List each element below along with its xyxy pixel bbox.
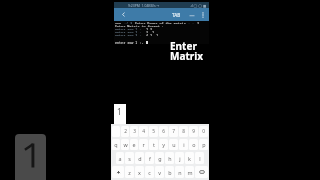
button[interactable]: c [145,166,154,178]
button[interactable]: Backspace [195,166,208,178]
staticText: Enter Power of the matrix [135,21,186,24]
staticText: n [178,169,182,176]
staticText: i [183,141,185,148]
button[interactable]: n [175,166,184,178]
staticText: enter row 1 :- [115,40,146,44]
staticText: 3 [197,21,200,24]
button[interactable]: f [145,152,154,164]
staticText: 3,-2 [146,30,155,33]
button[interactable]: 5 [149,126,158,137]
staticText: k [188,155,191,162]
button[interactable]: v [155,166,164,178]
staticText: TAB [172,12,181,18]
staticText: 3 [133,128,136,135]
button[interactable]: g [155,152,164,164]
button[interactable]: d [135,152,144,164]
staticText: 0 [202,128,205,135]
button[interactable]: z [125,166,134,178]
staticText: r [142,141,145,148]
staticText: :/ $ [122,21,135,24]
button[interactable]: l [195,152,204,164]
staticText: enter row 1 :- [115,27,146,30]
button[interactable]: 9 [189,126,198,137]
staticText: 2 [124,128,127,135]
button[interactable]: a [116,152,124,164]
staticText: l [199,155,201,162]
button[interactable]: 3 [130,126,138,137]
button[interactable]: q [112,139,120,150]
button[interactable]: j [175,152,184,164]
staticText: 4,2,-1 [146,33,159,36]
staticText: o [192,141,196,148]
staticText: 9:23PM 1.04KB/s → [128,3,160,8]
button[interactable]: 7 [169,126,178,137]
button[interactable]: 8 [179,126,188,137]
button[interactable]: w [121,139,129,150]
staticText: 9 [192,128,195,135]
staticText: c [148,169,151,176]
staticText: Enter [170,39,197,53]
staticText: .ıl ◯ ◯ ■ [190,3,207,8]
button[interactable]: More options [199,11,206,18]
staticText: q [114,141,118,148]
button[interactable]: e [130,139,138,150]
button[interactable]: 0 [199,126,208,137]
staticText: m [187,169,193,176]
button[interactable]: o [189,139,198,150]
staticText: j [179,155,181,162]
staticText: x [138,169,141,176]
staticText: enter row 3 :- [115,33,146,36]
staticText: w [123,141,128,148]
staticText: :-: [186,21,197,24]
staticText: app [115,21,122,24]
staticText: 6 [162,128,165,135]
staticText: 1 [117,106,122,117]
button[interactable]: y [159,139,168,150]
staticText: g [158,155,162,162]
button[interactable]: 4 [139,126,148,137]
staticText: Matrix [170,49,203,63]
staticText: t [153,141,155,148]
staticText: y [162,141,165,148]
staticText: s [128,155,131,162]
button[interactable]: m [185,166,194,178]
staticText: 8 [182,128,185,135]
button[interactable]: p [199,139,208,150]
button[interactable]: Key 1 [15,134,46,180]
button[interactable]: t [149,139,158,150]
staticText: u [172,141,176,148]
staticText: f [149,155,151,162]
staticText: z [128,169,131,176]
button[interactable]: Back [119,10,128,19]
staticText: d [138,155,142,162]
button[interactable]: s [125,152,134,164]
button[interactable]: x [135,166,144,178]
staticText: 7 [172,128,175,135]
button[interactable]: 1 [114,104,126,136]
button[interactable]: 6 [159,126,168,137]
button[interactable]: k [185,152,194,164]
button[interactable]: i [179,139,188,150]
staticText: v [158,169,161,176]
staticText: b [168,169,172,176]
staticText: h [168,155,172,162]
staticText: e [132,141,136,148]
button[interactable]: b [165,166,174,178]
staticText: 5 [152,128,155,135]
button[interactable]: h [165,152,174,164]
staticText: a [118,155,122,162]
staticText: 4 [142,128,145,135]
button[interactable]: 2 [121,126,129,137]
staticText: p [202,141,206,148]
staticText: 2,3 [146,27,153,30]
button[interactable]: Shift [112,166,124,178]
staticText: enter row 2 :- [115,30,146,33]
staticText: Enter Matrix in format : [115,24,164,27]
button[interactable]: u [169,139,178,150]
button[interactable]: r [139,139,148,150]
